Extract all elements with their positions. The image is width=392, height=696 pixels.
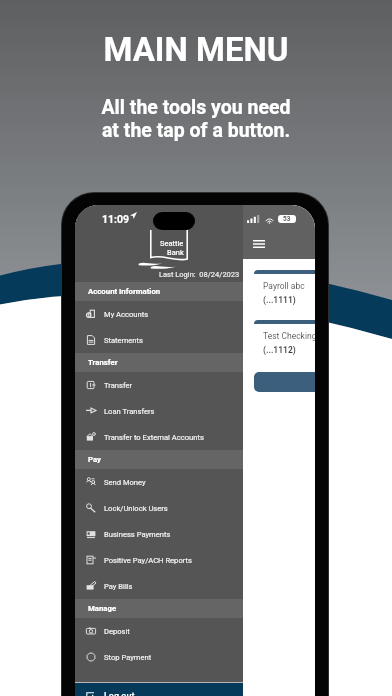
button[interactable]: Transfer — [75, 372, 243, 398]
staticText: Manage — [88, 604, 117, 613]
button[interactable]: Transfer to External Accounts — [75, 424, 243, 450]
staticText: Statements — [104, 336, 143, 345]
button[interactable]: Pay Bills — [75, 573, 243, 599]
staticText: Log out — [104, 691, 135, 696]
staticText: (...1112) — [263, 345, 296, 355]
staticText: 11:09 — [102, 213, 130, 225]
staticText: Pay — [88, 455, 102, 464]
staticText: All the tools you need at the tap of a b… — [0, 96, 392, 142]
staticText: 53 — [283, 215, 291, 223]
staticText: Seattle — [160, 239, 184, 248]
button[interactable]: Test Checking — [254, 320, 315, 362]
button[interactable]: Statements — [75, 327, 243, 353]
button[interactable]: Send Money — [75, 469, 243, 495]
button[interactable]: Loan Transfers — [75, 398, 243, 424]
staticText: Last Login: 08/24/2023 — [159, 270, 240, 279]
staticText: Lock/Unlock Users — [104, 504, 168, 513]
button[interactable]: My Accounts — [75, 301, 243, 327]
staticText: Send Money — [104, 478, 146, 487]
staticText: Pay Bills — [104, 582, 133, 591]
button[interactable]: Payroll abc — [254, 270, 315, 312]
staticText: Payroll abc — [263, 281, 305, 291]
staticText: Stop Payment — [104, 653, 152, 662]
staticText: Test Checking — [263, 331, 315, 341]
button[interactable]: Business Payments — [75, 521, 243, 547]
staticText: Transfer to External Accounts — [104, 433, 204, 442]
button[interactable]: Open navigation menu — [248, 236, 270, 252]
staticText: Deposit — [104, 627, 130, 636]
button[interactable] — [254, 372, 315, 392]
staticText: Account Information — [88, 287, 161, 296]
button[interactable]: Stop Payment — [75, 644, 243, 670]
staticText: Transfer — [104, 381, 133, 390]
button[interactable]: Positive Pay/ACH Reports — [75, 547, 243, 573]
staticText: Business Payments — [104, 530, 171, 539]
staticText: Bank — [167, 248, 184, 257]
button[interactable]: Deposit — [75, 618, 243, 644]
staticText: Loan Transfers — [104, 407, 155, 416]
staticText: (...1111) — [263, 295, 296, 305]
staticText: MAIN MENU — [0, 30, 392, 69]
button[interactable]: Lock/Unlock Users — [75, 495, 243, 521]
staticText: Transfer — [88, 358, 118, 367]
staticText: My Accounts — [104, 310, 149, 319]
button[interactable]: Log out — [75, 683, 243, 696]
staticText: Positive Pay/ACH Reports — [104, 556, 192, 565]
